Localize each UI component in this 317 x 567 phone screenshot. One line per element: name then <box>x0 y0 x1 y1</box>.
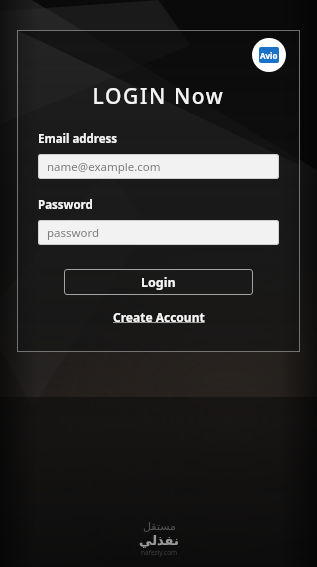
staticText: LOGIN Now <box>17 82 300 111</box>
staticText: nafezly.com <box>141 548 178 557</box>
other: Avio logo <box>252 38 286 72</box>
staticText: نفذلي <box>139 533 179 548</box>
staticText: مستقل <box>143 520 176 533</box>
staticText: Avio <box>260 50 278 61</box>
button[interactable]: Create Account <box>107 307 211 327</box>
button[interactable]: Login <box>64 269 253 295</box>
staticText: Password <box>38 197 93 213</box>
staticText: Create Account <box>113 309 205 325</box>
button[interactable]: password <box>38 220 279 245</box>
staticText: Email address <box>38 131 118 147</box>
staticText: Login <box>141 274 176 291</box>
staticText: name@example.com <box>47 159 161 175</box>
staticText: password <box>47 225 100 241</box>
button[interactable]: name@example.com <box>38 154 279 179</box>
